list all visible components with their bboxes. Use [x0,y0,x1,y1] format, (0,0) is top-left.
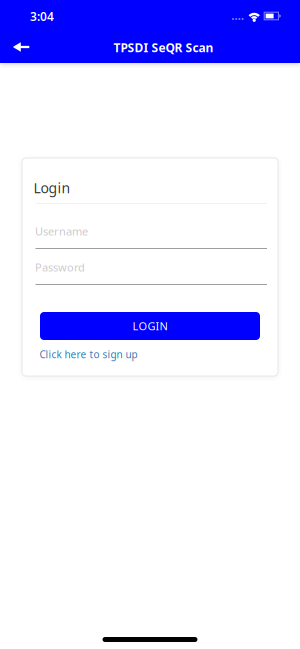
staticText: Password [35,260,85,275]
staticText: TPSDI SeQR Scan [113,40,213,55]
staticText: Username [35,224,88,238]
button[interactable]: LOGIN [40,312,260,340]
staticText: LOGIN [132,319,167,333]
staticText: 3:04 [30,8,54,24]
button[interactable]: Back [0,0,44,63]
staticText: Login [34,179,71,197]
staticText: Click here to sign up [40,348,138,361]
button[interactable]: Click here to sign up [40,348,138,361]
